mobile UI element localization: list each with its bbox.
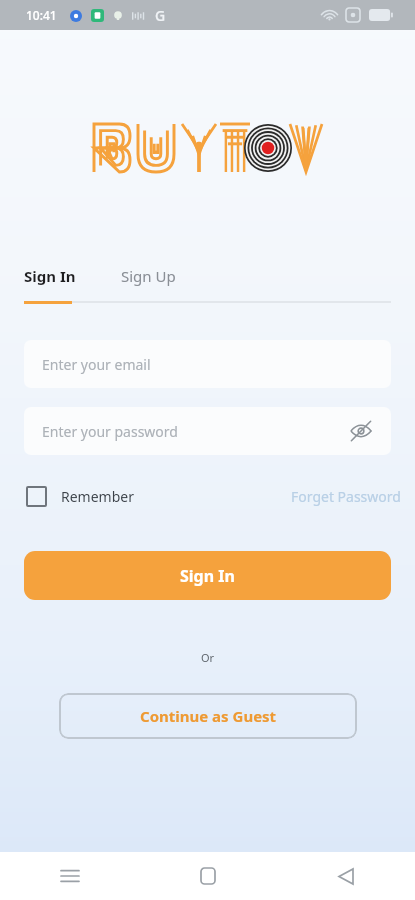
staticText: Forget Password <box>291 487 401 506</box>
button[interactable]: Back <box>277 852 415 900</box>
staticText: Remember <box>61 487 134 506</box>
button[interactable]: Sign In <box>24 262 76 290</box>
button[interactable]: Sign Up <box>121 262 176 290</box>
button[interactable]: Sign In <box>24 551 391 600</box>
button[interactable]: Recents <box>0 852 139 900</box>
staticText: Continue as Guest <box>140 706 277 726</box>
staticText: Enter your email <box>42 355 151 374</box>
staticText: G <box>155 6 166 25</box>
button[interactable]: Continue as Guest <box>59 693 357 739</box>
staticText: Enter your password <box>42 422 178 441</box>
staticText: Sign In <box>24 266 76 286</box>
button[interactable]: Show password <box>345 415 377 447</box>
staticText: 10:41 <box>26 7 57 23</box>
button[interactable]: Forget Password <box>287 483 405 510</box>
staticText: Sign Up <box>121 266 176 286</box>
button[interactable]: Enter your email <box>24 340 391 388</box>
staticText: Or <box>0 650 415 665</box>
button[interactable]: Enter your password <box>24 407 391 455</box>
button[interactable]: Remember <box>26 486 134 507</box>
staticText: Sign In <box>180 565 235 587</box>
button[interactable]: Home <box>139 852 277 900</box>
